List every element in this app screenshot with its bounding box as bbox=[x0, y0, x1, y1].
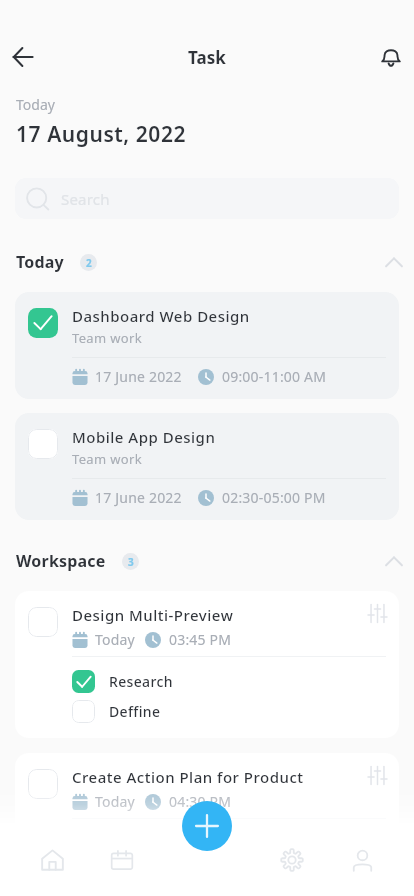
staticText: Mobile App Design bbox=[72, 427, 216, 447]
staticText: Create Action Plan for Product bbox=[72, 767, 304, 787]
button[interactable]: Completed bbox=[15, 292, 399, 399]
staticText: 3 bbox=[128, 555, 134, 569]
button[interactable]: Mark complete bbox=[28, 769, 58, 799]
button[interactable]: Mark complete bbox=[72, 862, 158, 882]
button[interactable]: Completed bbox=[72, 670, 95, 693]
staticText: Today bbox=[95, 792, 135, 811]
staticText: 02:30-05:00 PM bbox=[222, 488, 326, 507]
staticText: Plan bbox=[109, 834, 140, 853]
staticText: Research bbox=[109, 672, 173, 691]
button[interactable]: Settings bbox=[268, 836, 316, 884]
button[interactable]: Mark complete bbox=[72, 700, 161, 723]
staticText: Today bbox=[16, 95, 55, 114]
button[interactable]: Completed bbox=[28, 308, 58, 338]
button[interactable]: Mark complete bbox=[15, 591, 399, 738]
button[interactable]: Mark complete bbox=[72, 700, 95, 723]
button[interactable]: Mark complete bbox=[15, 753, 399, 896]
button[interactable]: Collapse Workspace bbox=[382, 549, 406, 573]
staticText: 17 June 2022 bbox=[95, 488, 182, 507]
staticText: Deffine bbox=[109, 702, 161, 721]
button[interactable]: Mark complete bbox=[28, 607, 58, 637]
button[interactable]: Completed bbox=[72, 670, 173, 693]
button[interactable]: Workspace bbox=[16, 549, 406, 573]
button[interactable]: Calendar bbox=[98, 836, 146, 884]
button[interactable]: Profile bbox=[338, 836, 386, 884]
staticText: Task bbox=[188, 46, 226, 69]
button[interactable]: Task options bbox=[365, 601, 389, 625]
button[interactable]: Mark complete bbox=[28, 429, 58, 459]
button[interactable]: Collapse Today bbox=[382, 250, 406, 274]
button[interactable]: Back bbox=[0, 34, 46, 80]
button[interactable]: Mark complete bbox=[15, 413, 399, 520]
staticText: 2 bbox=[86, 256, 92, 270]
button[interactable]: Home bbox=[28, 836, 76, 884]
staticText: 17 June 2022 bbox=[95, 367, 182, 386]
staticText: Today bbox=[16, 251, 64, 273]
button[interactable]: Notifications bbox=[368, 34, 414, 80]
staticText: 03:45 PM bbox=[169, 630, 232, 649]
button[interactable]: Add task bbox=[182, 801, 232, 851]
staticText: 17 August, 2022 bbox=[16, 120, 187, 149]
staticText: Design Multi-Preview bbox=[72, 605, 234, 625]
staticText: Workspace bbox=[16, 550, 106, 572]
staticText: 09:00-11:00 AM bbox=[222, 367, 327, 386]
staticText: Today bbox=[95, 630, 135, 649]
button[interactable]: Task options bbox=[365, 763, 389, 787]
staticText: Dashboard Web Design bbox=[72, 306, 250, 326]
staticText: Team work bbox=[72, 329, 143, 347]
button[interactable]: Today bbox=[16, 250, 406, 274]
staticText: Review bbox=[109, 863, 158, 882]
staticText: 04:30 PM bbox=[169, 792, 232, 811]
staticText: Team work bbox=[72, 450, 143, 468]
staticText: Search bbox=[61, 189, 110, 209]
button[interactable]: Mark complete bbox=[72, 832, 140, 855]
